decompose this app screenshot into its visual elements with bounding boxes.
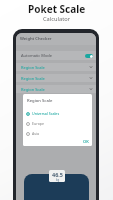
button[interactable]: Region Scale (16, 85, 96, 93)
staticText: Universal Scales (32, 111, 60, 116)
staticText: Region Scale (27, 98, 53, 104)
staticText: Europe (32, 121, 45, 126)
staticText: Region Scale (21, 65, 45, 70)
staticText: kg (56, 178, 60, 182)
staticText: OK (83, 139, 89, 144)
staticText: Weight Checker (20, 36, 52, 42)
button[interactable]: OK (81, 138, 91, 145)
button[interactable]: Asia (23, 129, 92, 138)
staticText: Region Scale (21, 87, 45, 92)
staticText: Region Scale (21, 76, 45, 81)
staticText: Asia (32, 131, 39, 136)
button[interactable]: Region Scale (16, 74, 96, 82)
staticText: Poket Scale (28, 2, 86, 16)
button[interactable]: Region Scale (16, 63, 96, 71)
staticText: Calculator (43, 15, 70, 23)
staticText: Automatic Mode (21, 53, 53, 58)
other: Automatic mode toggle (85, 54, 93, 58)
staticText: 46.5 (52, 171, 63, 178)
button[interactable]: Automatic Mode (16, 51, 96, 60)
button[interactable]: Universal Scales (23, 109, 92, 118)
button[interactable]: Europe (23, 119, 92, 128)
